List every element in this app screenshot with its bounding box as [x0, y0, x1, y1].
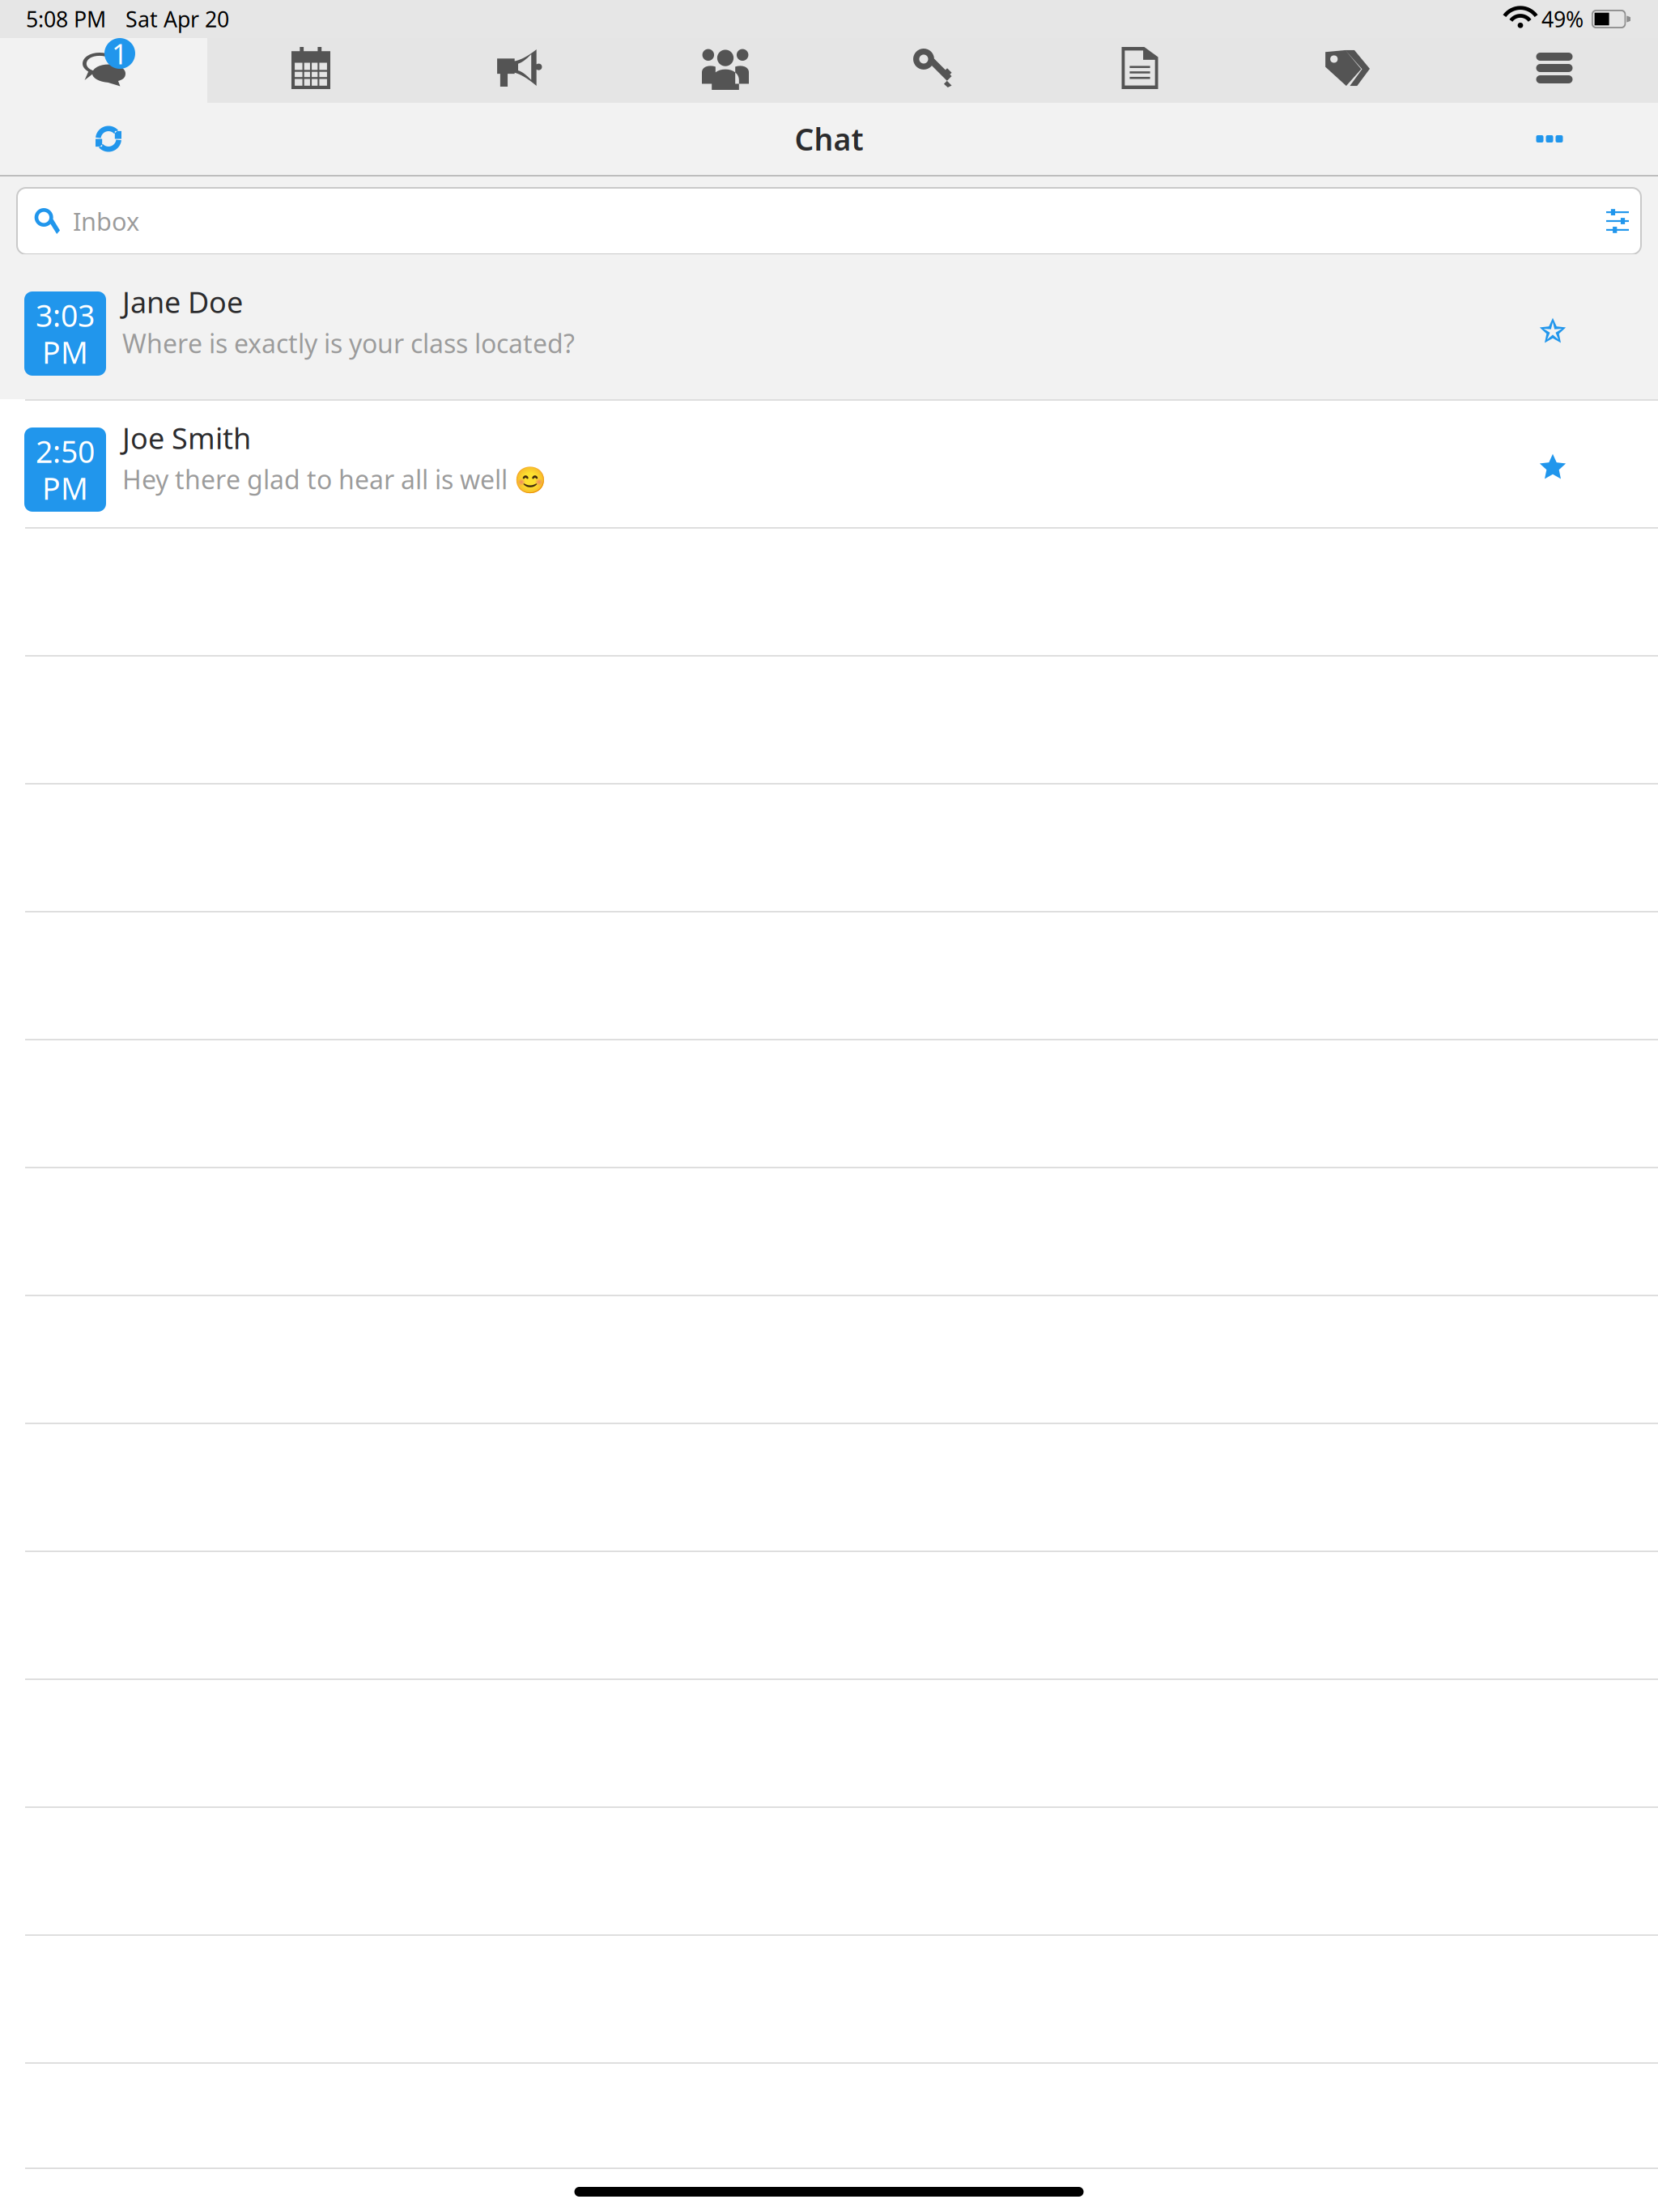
staticText: Inbox — [73, 205, 139, 237]
staticText: Jane Doe — [122, 282, 243, 321]
staticText: Joe Smith — [122, 418, 251, 457]
button[interactable]: Announcements — [414, 38, 622, 103]
staticText: 49% — [1541, 5, 1584, 33]
button[interactable]: Tags — [1243, 38, 1451, 103]
staticText: 3:03 — [36, 295, 95, 335]
button[interactable]: Refresh — [64, 103, 153, 175]
button[interactable]: People — [622, 38, 829, 103]
button[interactable]: Keys — [829, 38, 1036, 103]
staticText: Where is exactly is your class located? — [122, 326, 575, 360]
button[interactable]: Calendar — [207, 38, 414, 103]
staticText: Sat Apr 20 — [125, 5, 229, 33]
button[interactable]: Documents — [1036, 38, 1243, 103]
staticText: 2:50 — [36, 431, 95, 471]
button[interactable]: 2:50 — [0, 401, 1658, 527]
button[interactable]: Chat — [0, 38, 207, 103]
staticText: PM — [42, 468, 88, 508]
button[interactable]: 3:03 — [0, 254, 1658, 399]
button[interactable]: More — [1451, 38, 1658, 103]
staticText: PM — [42, 332, 88, 372]
staticText: Chat — [795, 119, 863, 159]
button[interactable]: More options — [1505, 103, 1594, 175]
staticText: 5:08 PM — [26, 5, 106, 33]
staticText: 1 — [112, 35, 128, 72]
staticText: Hey there glad to hear all is well 😊 — [122, 462, 546, 496]
